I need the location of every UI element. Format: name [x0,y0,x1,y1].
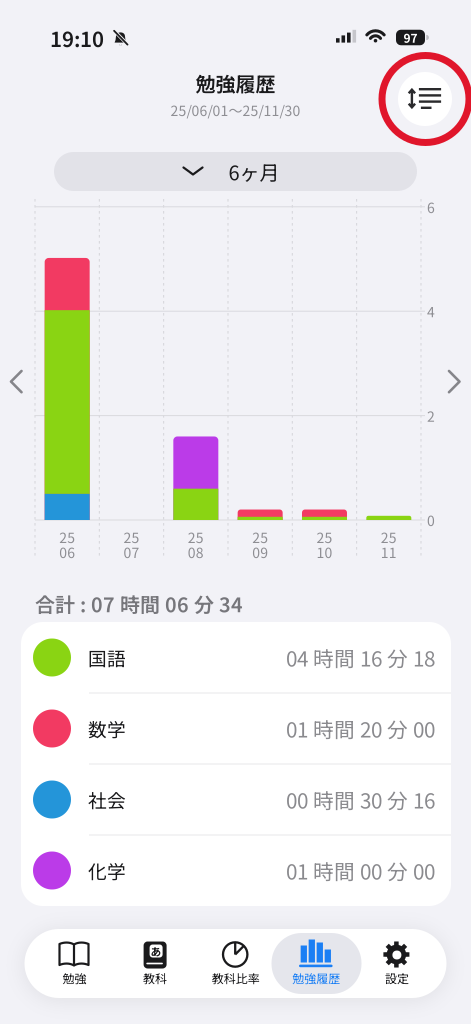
staticText: 0 [427,510,435,530]
button[interactable]: 教科比率 [197,930,275,994]
button[interactable] [398,72,452,126]
staticText: 勉強 [62,969,86,987]
staticText: 25 [381,527,397,547]
staticText: 25 [123,527,139,547]
staticText: 25 [188,527,204,547]
staticText: 25 [316,527,332,547]
staticText: 97 [403,29,417,46]
staticText: 10 [316,542,332,562]
staticText: 11 [381,542,397,562]
button[interactable] [449,371,460,393]
staticText: 教科 [143,969,167,987]
button[interactable]: 化学 [21,835,451,906]
staticText: あ [151,943,162,959]
button[interactable]: あ [116,930,194,994]
staticText: 00 時間 30 分 16 [286,784,435,814]
staticText: 06 [59,542,75,562]
button[interactable]: 数学 [21,693,451,764]
button[interactable]: 勉強履歴 [277,930,355,994]
button[interactable]: 6ヶ月 [54,152,417,191]
staticText: 08 [188,542,204,562]
button[interactable] [11,371,22,393]
staticText: 07 [123,542,139,562]
staticText: 19:10 [50,23,104,53]
staticText: 勉強履歴 [292,969,340,987]
button[interactable]: 社会 [21,764,451,835]
staticText: 25/06/01～25/11/30 [170,100,300,120]
staticText: 教科比率 [212,969,260,987]
staticText: 25 [252,527,268,547]
staticText: 勉強履歴 [195,68,275,97]
staticText: 化学 [88,857,126,884]
staticText: 合計 : 07 時間 06 分 34 [35,589,243,618]
staticText: 01 時間 00 分 00 [286,855,435,885]
staticText: 2 [427,405,435,426]
staticText: 設定 [385,969,409,987]
staticText: 01 時間 20 分 00 [286,713,435,743]
button[interactable]: 国語 [21,622,451,693]
staticText: 国語 [88,644,126,671]
staticText: 社会 [88,786,126,813]
button[interactable]: 設定 [358,930,436,994]
staticText: 数学 [88,715,126,742]
staticText: 6ヶ月 [228,157,279,186]
button[interactable]: 勉強 [35,930,113,994]
staticText: 25 [59,527,75,547]
staticText: 04 時間 16 分 18 [286,642,435,672]
staticText: 4 [427,301,435,321]
staticText: 09 [252,542,268,562]
staticText: 6 [427,197,435,217]
